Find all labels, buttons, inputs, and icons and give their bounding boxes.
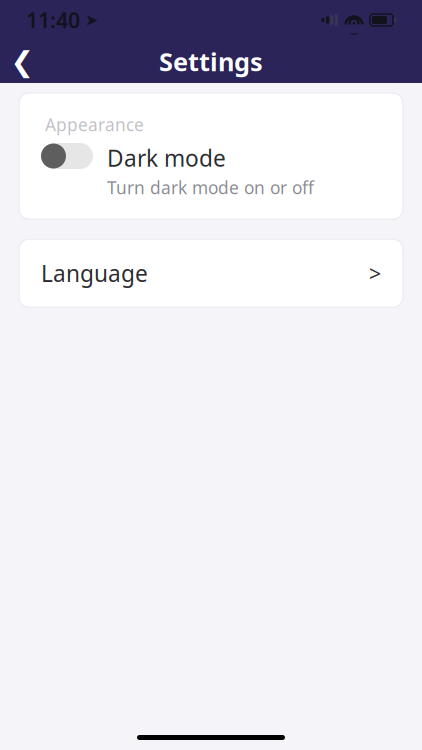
staticText: Turn dark mode on or off bbox=[107, 176, 314, 199]
button[interactable]: Back bbox=[0, 40, 44, 83]
staticText: ❮ bbox=[10, 46, 33, 77]
staticText: Language bbox=[41, 258, 148, 288]
button[interactable]: Dark mode toggle bbox=[41, 143, 93, 169]
staticText: 11:40 bbox=[26, 6, 80, 34]
staticText: Settings bbox=[159, 45, 263, 78]
staticText: Dark mode bbox=[107, 143, 226, 173]
staticText: ➤ bbox=[85, 11, 98, 29]
staticText: > bbox=[369, 259, 381, 287]
button[interactable]: Language bbox=[19, 239, 403, 307]
staticText: Appearance bbox=[45, 113, 144, 136]
